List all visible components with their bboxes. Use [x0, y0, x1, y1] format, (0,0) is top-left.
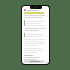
- button[interactable]: Status: [24, 9, 47, 11]
- button[interactable]: [24, 12, 44, 14]
- button[interactable]: Status: [22, 6, 49, 64]
- button[interactable]: Send: [24, 60, 47, 63]
